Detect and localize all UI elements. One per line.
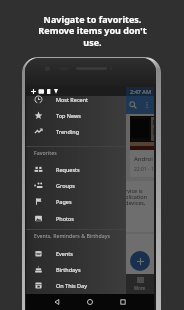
button[interactable]: Photos bbox=[26, 210, 126, 226]
button[interactable]: Requests bbox=[26, 161, 126, 177]
staticText: 2:47 AM bbox=[130, 88, 152, 95]
button[interactable]: Search bbox=[126, 98, 140, 112]
staticText: Groups bbox=[56, 182, 75, 189]
staticText: Androi bbox=[134, 155, 153, 163]
staticText: Top News bbox=[56, 112, 81, 119]
staticText: Pages bbox=[56, 198, 72, 205]
staticText: Favorites bbox=[34, 149, 57, 156]
button[interactable]: Trending bbox=[26, 123, 126, 139]
button[interactable]: Home bbox=[83, 295, 97, 309]
button[interactable]: Add bbox=[130, 251, 150, 271]
button[interactable]: Recents bbox=[116, 295, 130, 309]
staticText: On This Day bbox=[56, 282, 87, 289]
button[interactable]: On This Day bbox=[26, 277, 126, 293]
staticText: 22:01 - 1 bbox=[134, 166, 154, 173]
staticText: More bbox=[134, 285, 146, 291]
button[interactable]: Most Recent bbox=[26, 91, 126, 107]
staticText: Birthdays bbox=[56, 266, 81, 273]
staticText: rvice is plication devices, bbox=[125, 187, 148, 207]
button[interactable]: More options bbox=[140, 98, 154, 112]
button[interactable]: Pages bbox=[26, 193, 126, 209]
staticText: Trending bbox=[56, 128, 80, 135]
button[interactable]: Groups bbox=[26, 177, 126, 193]
staticText: Photos bbox=[56, 215, 75, 222]
button[interactable]: More bbox=[126, 274, 154, 294]
button[interactable]: Back bbox=[50, 295, 64, 309]
button[interactable]: Events bbox=[26, 245, 126, 261]
staticText: Events, Reminders & Birthdays bbox=[34, 232, 111, 239]
staticText: Navigate to favorites. Remove items you … bbox=[38, 13, 147, 49]
staticText: Most Recent bbox=[56, 96, 89, 103]
button[interactable]: rvice is plication devices, bbox=[122, 181, 154, 232]
staticText: Events bbox=[56, 250, 73, 257]
button[interactable]: Androi bbox=[130, 116, 154, 177]
button[interactable]: Top News bbox=[26, 107, 126, 123]
button[interactable]: Birthdays bbox=[26, 261, 126, 277]
staticText: Requests bbox=[56, 166, 80, 173]
button[interactable] bbox=[122, 234, 154, 274]
